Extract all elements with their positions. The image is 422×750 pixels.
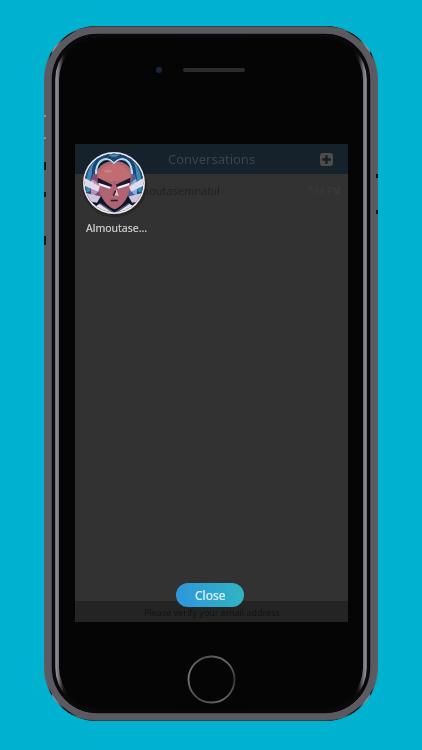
staticText: Close [195,587,226,603]
staticText: Almoutase… [86,221,148,235]
staticText: Almoutasemnabil [129,183,220,198]
button[interactable]: New conversation [320,153,333,166]
staticText: Conversations [168,150,256,168]
button[interactable]: Almoutasemnabil [75,174,348,236]
button[interactable]: Close [176,583,244,607]
button[interactable]: Please verify your email address [75,601,348,622]
staticText: Please verify your email address [144,606,280,618]
